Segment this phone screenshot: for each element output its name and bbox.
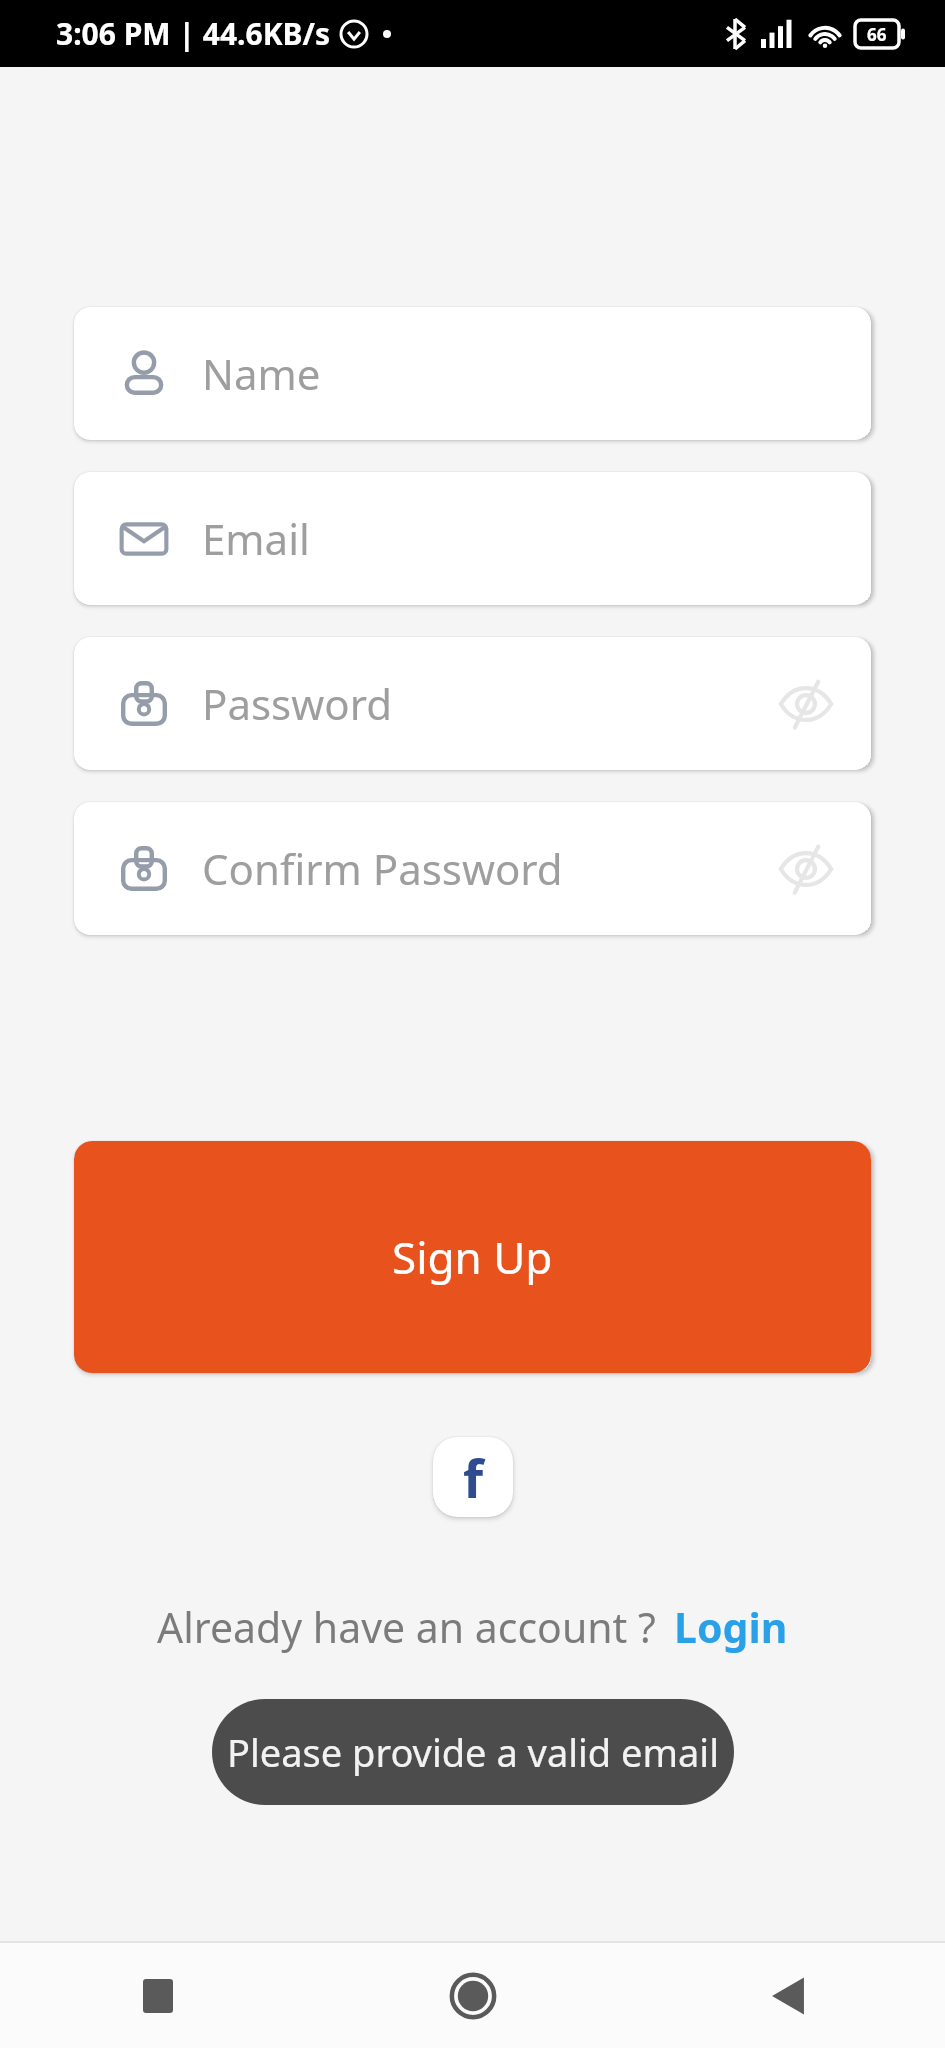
staticText: Please provide a valid email <box>227 1726 719 1778</box>
button[interactable]: Sign up with Facebook <box>433 1437 513 1517</box>
button[interactable]: Password <box>74 637 871 770</box>
button[interactable]: Name <box>74 307 871 440</box>
button[interactable]: Login <box>674 1599 788 1655</box>
button[interactable]: Show password <box>763 826 849 912</box>
button[interactable]: Home <box>315 1943 630 2048</box>
staticText: Confirm Password <box>202 840 563 897</box>
staticText: Name <box>202 345 321 402</box>
staticText: f <box>463 1442 484 1513</box>
staticText: Password <box>202 675 392 732</box>
button[interactable]: Sign Up <box>74 1141 871 1373</box>
staticText: 66 <box>867 23 887 46</box>
staticText: 3:06 PM | 44.6KB/s <box>56 13 331 54</box>
button[interactable]: Email <box>74 472 871 605</box>
button[interactable]: Show password <box>763 661 849 747</box>
button[interactable]: Back <box>630 1943 945 2048</box>
button[interactable]: Confirm Password <box>74 802 871 935</box>
staticText: Login <box>674 1599 788 1655</box>
staticText: Already have an account ? <box>157 1599 656 1655</box>
staticText: Sign Up <box>392 1227 553 1287</box>
button[interactable]: Recent apps <box>0 1943 315 2048</box>
staticText: Email <box>202 510 310 567</box>
